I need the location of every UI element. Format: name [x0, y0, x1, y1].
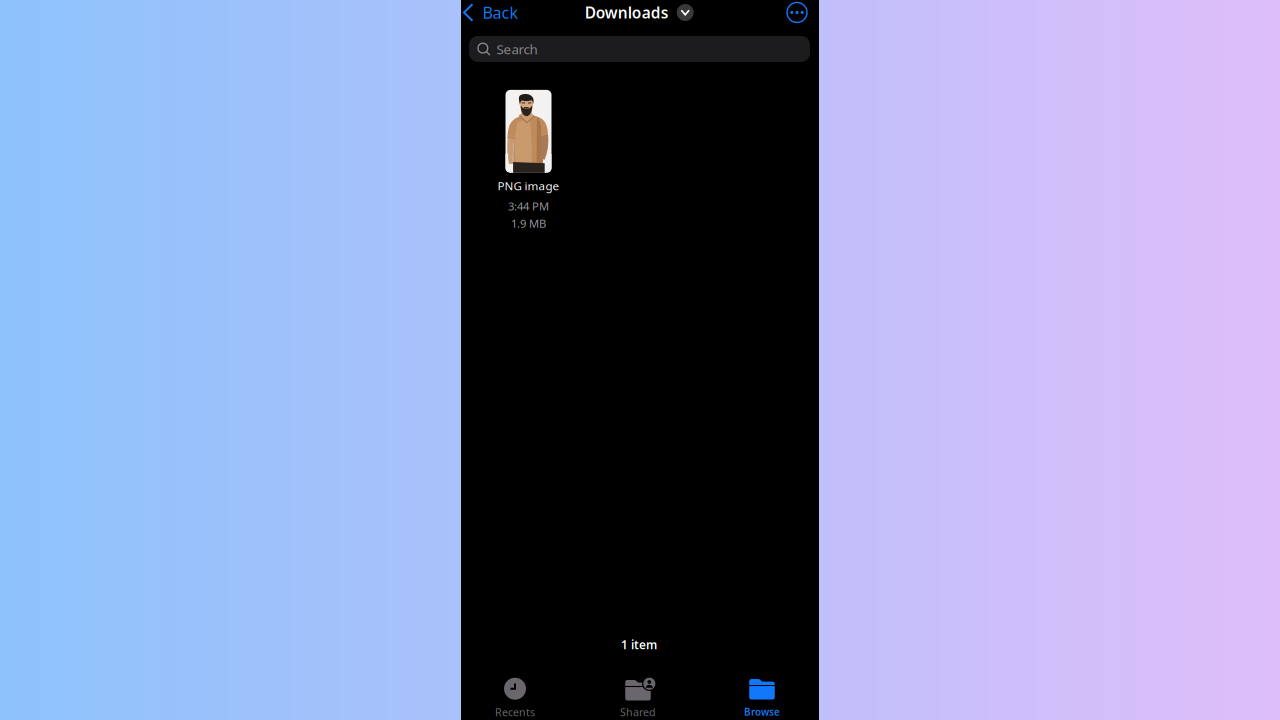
staticText: Shared	[620, 705, 656, 719]
button[interactable]: Search	[469, 36, 810, 62]
button[interactable]: Downloads	[585, 0, 694, 27]
staticText: Downloads	[585, 2, 669, 23]
staticText: Recents	[495, 705, 535, 719]
button[interactable]: Recents	[459, 674, 571, 720]
button[interactable]: Browse	[706, 674, 818, 720]
staticText: 1.9 MB	[511, 216, 546, 231]
staticText: 3:44 PM	[508, 199, 549, 214]
staticText: Search	[496, 40, 537, 58]
button[interactable]: Shared	[582, 674, 694, 720]
staticText: Browse	[744, 705, 780, 719]
staticText: Back	[482, 2, 518, 23]
button[interactable]: PNG image	[480, 90, 576, 231]
staticText: PNG image	[497, 178, 559, 194]
button[interactable]: More options	[783, 0, 811, 26]
staticText: 1 item	[621, 637, 657, 653]
button[interactable]: Back	[460, 0, 521, 28]
